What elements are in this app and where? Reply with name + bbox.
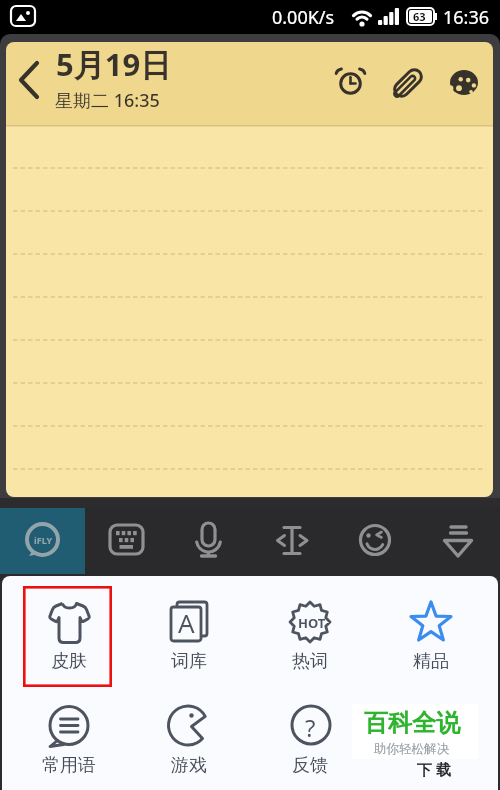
button[interactable] [188, 515, 230, 563]
staticText: 精品 [413, 650, 449, 673]
staticText: 星期二 16:35 [55, 88, 160, 113]
staticText: 游戏 [171, 754, 207, 777]
staticText: 皮肤 [51, 650, 87, 673]
staticText: iFLY [34, 534, 53, 546]
staticText: 5月19日 [56, 43, 172, 85]
button[interactable]: HOT [272, 588, 348, 683]
button[interactable]: 精品 [393, 588, 469, 683]
staticText: 下 载 [417, 759, 451, 779]
staticText: 热词 [292, 650, 328, 673]
staticText: 百科全说 [364, 708, 460, 738]
button[interactable] [448, 67, 488, 105]
staticText: 16:36 [443, 5, 490, 30]
button[interactable]: 皮肤 [27, 588, 111, 683]
staticText: ? [305, 711, 316, 744]
button[interactable] [330, 58, 372, 100]
staticText: HOT [298, 614, 326, 632]
button[interactable] [272, 519, 314, 563]
button[interactable]: iFLY [0, 508, 85, 574]
button[interactable] [10, 58, 52, 104]
button[interactable] [104, 519, 150, 561]
staticText: A [178, 605, 195, 640]
staticText: 助你轻松解决 [374, 741, 449, 757]
staticText: 0.00K/s [272, 5, 335, 30]
staticText: 反馈 [292, 754, 328, 777]
staticText: 63 [413, 9, 426, 24]
button[interactable]: ? [272, 698, 348, 784]
staticText: 词库 [171, 650, 207, 673]
button[interactable] [356, 521, 394, 559]
button[interactable]: A [151, 588, 227, 683]
button[interactable]: 游戏 [151, 698, 227, 784]
staticText: 常用语 [42, 754, 96, 777]
button[interactable] [440, 519, 476, 561]
button[interactable] [386, 62, 430, 106]
button[interactable]: 常用语 [27, 698, 111, 784]
